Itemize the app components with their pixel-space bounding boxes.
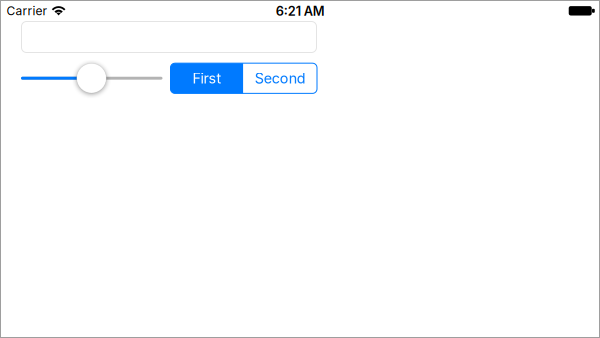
button[interactable]: First xyxy=(170,63,243,93)
staticText: First xyxy=(192,70,221,87)
button[interactable]: Second xyxy=(243,63,317,93)
staticText: Carrier xyxy=(6,4,47,18)
button[interactable]: Slider xyxy=(21,63,162,94)
button[interactable]: Text field xyxy=(21,21,317,53)
staticText: Second xyxy=(255,70,306,87)
staticText: 6:21 AM xyxy=(276,3,325,19)
